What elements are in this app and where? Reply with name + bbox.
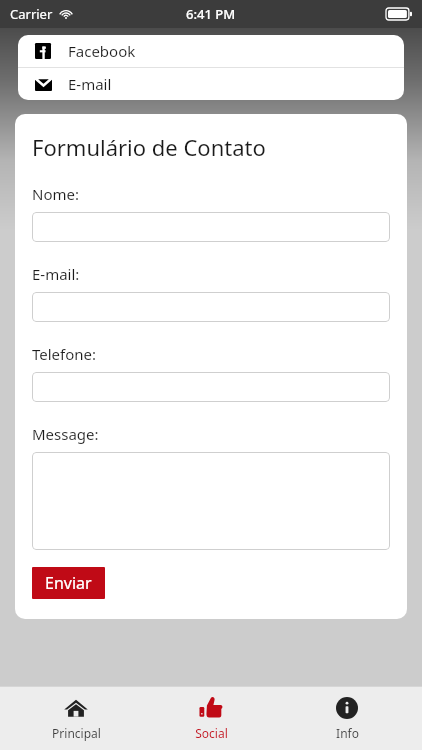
button[interactable] [32, 292, 390, 322]
staticText: E-mail [68, 74, 112, 94]
button[interactable] [32, 452, 390, 550]
staticText: Info [336, 725, 359, 741]
staticText: Formulário de Contato [32, 132, 266, 162]
other: Info [336, 697, 358, 719]
other: Social [199, 696, 223, 720]
button[interactable]: E-mail [18, 68, 404, 100]
staticText: Message: [32, 424, 99, 444]
button[interactable]: Facebook [18, 35, 404, 67]
staticText: Nome: [32, 184, 79, 204]
staticText: E-mail: [32, 264, 80, 284]
staticText: Principal [52, 725, 101, 741]
button[interactable]: Info [287, 690, 407, 747]
staticText: Social [195, 725, 228, 741]
staticText: Carrier [10, 5, 53, 23]
other: Principal [64, 696, 88, 720]
button[interactable]: Principal [16, 690, 136, 747]
button[interactable]: Enviar [32, 567, 105, 599]
staticText: Facebook [68, 41, 136, 61]
staticText: 6:41 PM [186, 5, 236, 23]
button[interactable] [32, 372, 390, 402]
button[interactable]: Social [151, 690, 271, 747]
button[interactable] [32, 212, 390, 242]
staticText: Enviar [45, 572, 92, 594]
staticText: Telefone: [32, 344, 97, 364]
